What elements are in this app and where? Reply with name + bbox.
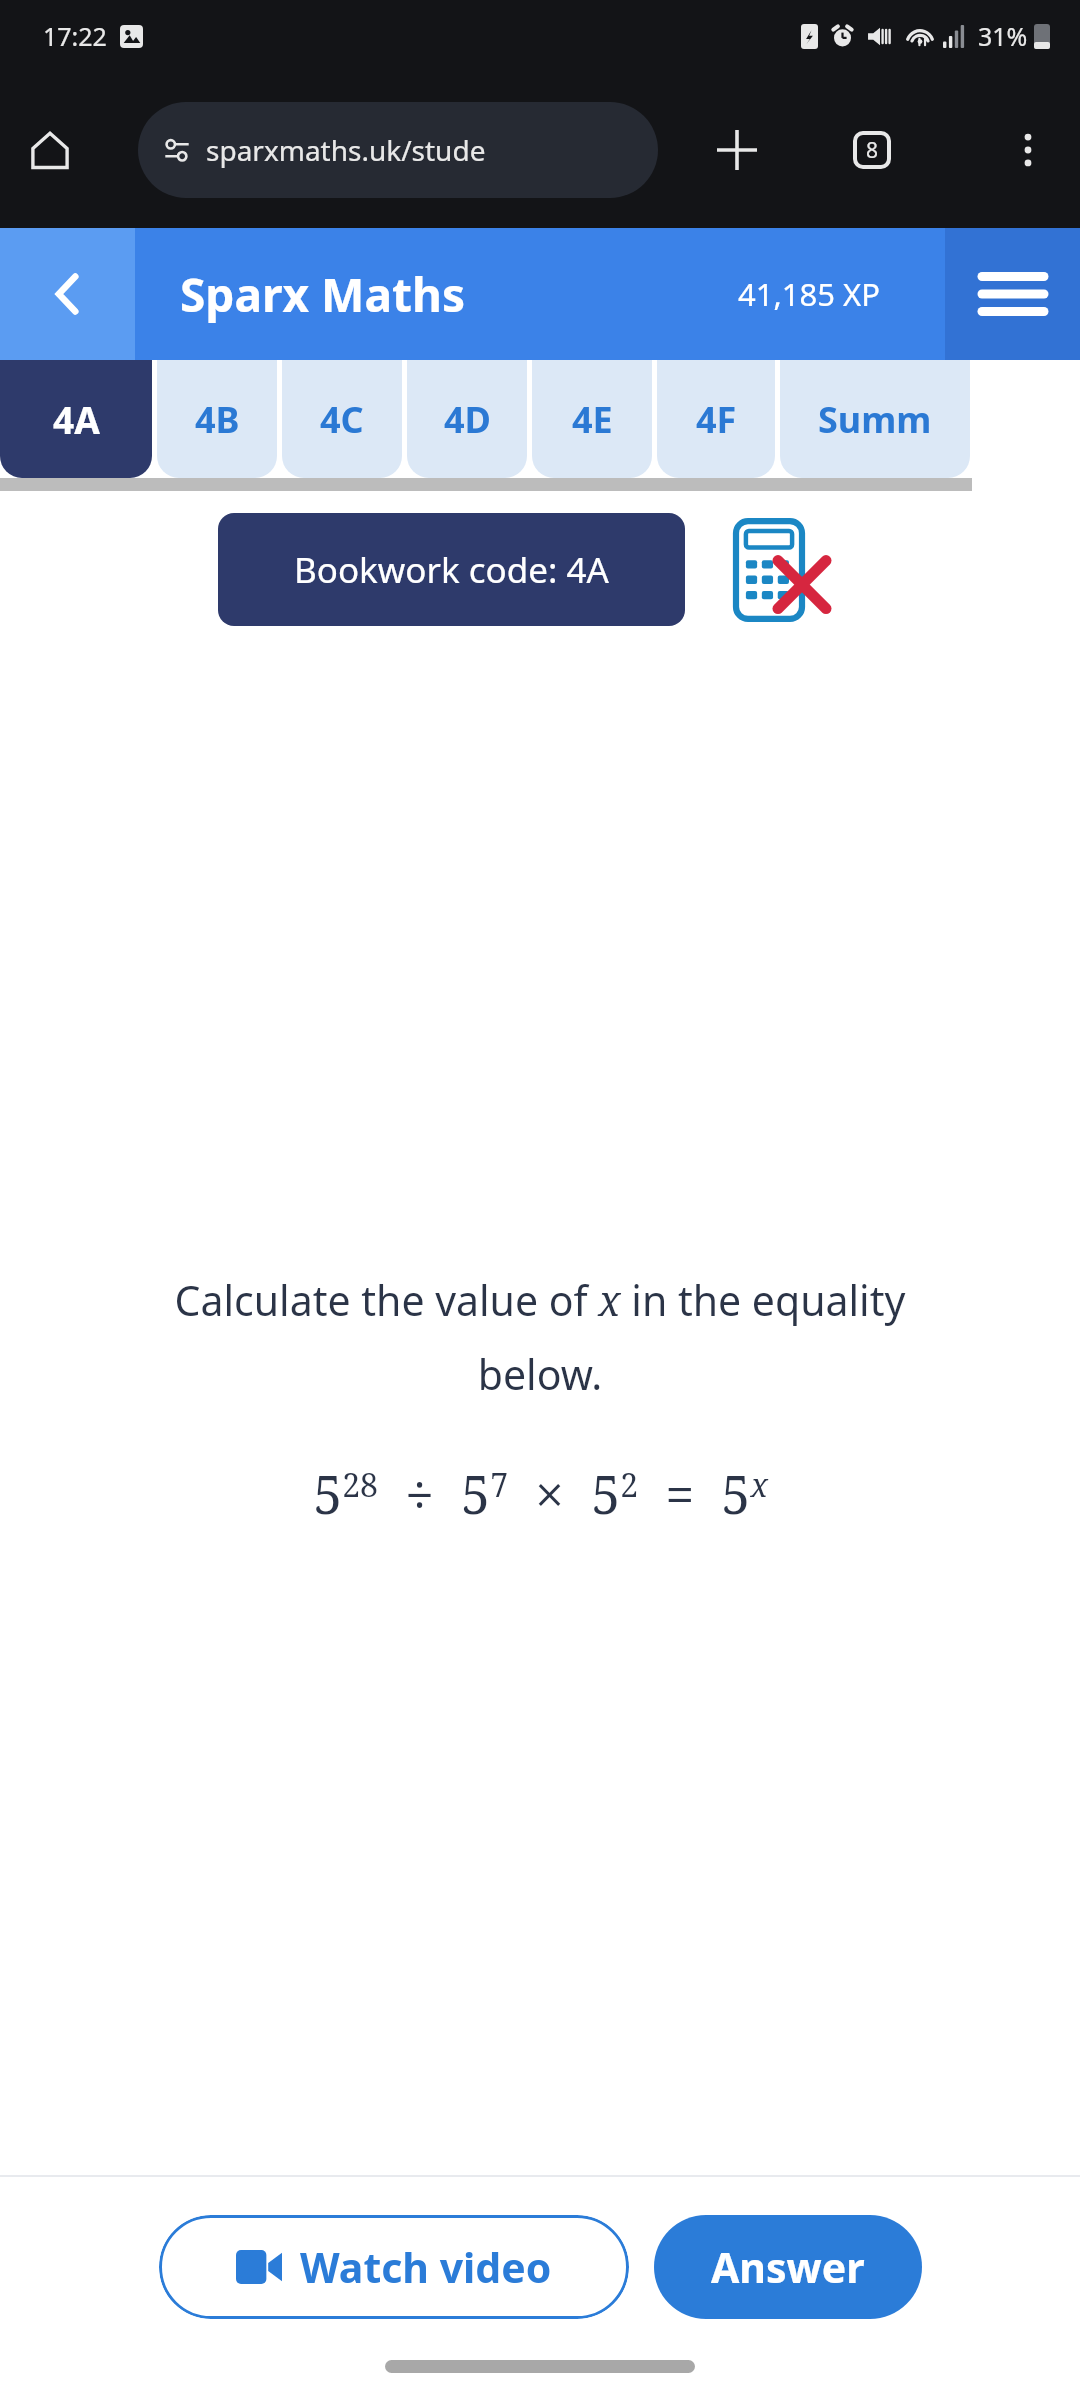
button[interactable]: Watch video: [159, 2215, 629, 2319]
button[interactable]: More options: [994, 116, 1062, 184]
staticText: 528 ÷ 57 × 52 = 5x: [313, 1458, 768, 1529]
staticText: 4E: [572, 395, 613, 444]
staticText: 17:22: [43, 19, 107, 53]
staticText: 4F: [696, 395, 737, 444]
staticText: 31%: [978, 19, 1028, 53]
button[interactable]: 4C: [282, 360, 402, 478]
button[interactable]: Bookwork code: 4A: [218, 513, 685, 626]
staticText: 4D: [444, 395, 491, 444]
button[interactable]: Menu: [945, 228, 1080, 360]
staticText: 41,185 XP: [738, 273, 880, 315]
staticText: Sparx Maths: [180, 263, 465, 326]
staticText: Calculate the value of x in the equality…: [140, 1272, 940, 1402]
button[interactable]: 4F: [657, 360, 775, 478]
staticText: Bookwork code: 4A: [294, 546, 609, 594]
staticText: Summ: [818, 395, 932, 444]
button[interactable]: Back: [0, 228, 135, 360]
staticText: Watch video: [300, 2239, 552, 2295]
button[interactable]: 4E: [532, 360, 652, 478]
button[interactable]: 4B: [157, 360, 277, 478]
button[interactable]: sparxmaths.uk/stude: [138, 102, 658, 198]
staticText: 4B: [195, 395, 240, 444]
staticText: 8: [866, 136, 879, 165]
staticText: sparxmaths.uk/stude: [206, 131, 486, 169]
button[interactable]: Home: [20, 120, 80, 180]
button[interactable]: Tabs, 8 open: [838, 116, 906, 184]
button[interactable]: 4A: [0, 360, 152, 478]
staticText: 4A: [53, 394, 100, 444]
button[interactable]: Summ: [780, 360, 970, 478]
staticText: Answer: [711, 2239, 865, 2295]
button[interactable]: Answer: [654, 2215, 922, 2319]
button[interactable]: 4D: [407, 360, 527, 478]
button[interactable]: New tab: [703, 116, 771, 184]
staticText: 4C: [320, 395, 364, 444]
